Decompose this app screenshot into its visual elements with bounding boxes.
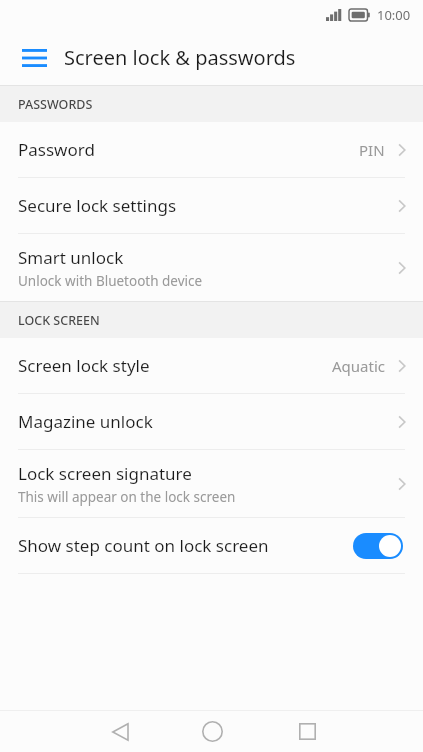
button[interactable]: Magazine unlock <box>0 394 423 449</box>
staticText: Screen lock style <box>18 354 150 377</box>
button[interactable]: Password <box>0 122 423 177</box>
staticText: Screen lock & passwords <box>64 44 296 71</box>
button[interactable]: Show step count on lock screen toggle <box>353 533 403 559</box>
staticText: This will appear on the lock screen <box>18 488 236 506</box>
button[interactable]: Screen lock style <box>0 338 423 393</box>
button[interactable]: Back <box>96 711 144 752</box>
staticText: Lock screen signature <box>18 462 192 485</box>
staticText: Aquatic <box>332 356 385 376</box>
staticText: Magazine unlock <box>18 410 153 433</box>
button[interactable]: Recent apps <box>283 711 331 752</box>
button[interactable]: Lock screen signature <box>0 450 423 517</box>
staticText: LOCK SCREEN <box>18 312 100 329</box>
button[interactable]: Home <box>188 711 236 752</box>
staticText: Secure lock settings <box>18 194 177 217</box>
button[interactable]: Show step count on lock screen <box>0 518 423 573</box>
staticText: Password <box>18 138 95 161</box>
button[interactable]: Secure lock settings <box>0 178 423 233</box>
staticText: PASSWORDS <box>18 96 93 113</box>
staticText: PIN <box>359 140 385 160</box>
staticText: Show step count on lock screen <box>18 534 353 557</box>
staticText: 10:00 <box>377 6 411 24</box>
staticText: Unlock with Bluetooth device <box>18 272 203 290</box>
button[interactable]: Smart unlock <box>0 234 423 301</box>
staticText: Smart unlock <box>18 246 124 269</box>
button[interactable]: Menu <box>10 34 58 82</box>
